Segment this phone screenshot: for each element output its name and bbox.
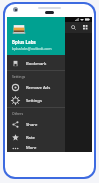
staticText: More	[26, 145, 37, 151]
button[interactable]: More	[7, 144, 65, 152]
staticText: Settings	[12, 74, 26, 79]
staticText: Bookmark	[26, 61, 47, 67]
button[interactable]: Share	[7, 118, 65, 131]
button[interactable]: Search	[69, 23, 78, 32]
button[interactable]: Remove Ads	[7, 81, 65, 94]
button[interactable]: Grid view	[81, 23, 90, 32]
staticText: Remove Ads	[26, 85, 51, 91]
button[interactable]: Rate	[7, 131, 65, 144]
button[interactable]: Bplus Labs	[7, 17, 65, 55]
staticText: bpluslabs@outlook.com	[12, 46, 52, 51]
staticText: Share	[26, 122, 38, 128]
staticText: Others	[12, 111, 24, 116]
button[interactable]: Settings	[7, 94, 65, 107]
button[interactable]: Bookmark	[7, 57, 65, 70]
staticText: Bplus Labs	[12, 39, 36, 45]
staticText: Rate	[26, 135, 35, 141]
staticText: Settings	[26, 98, 42, 104]
